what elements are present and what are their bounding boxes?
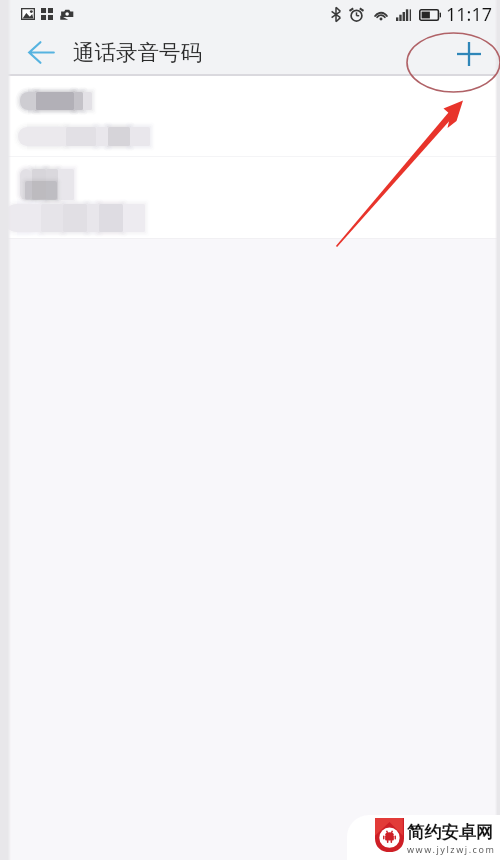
staticText: 通话录音号码	[73, 39, 202, 66]
button[interactable]	[0, 76, 500, 156]
button[interactable]: Add	[443, 28, 495, 76]
button[interactable]	[0, 157, 500, 237]
staticText: 简约安卓网	[407, 821, 493, 843]
staticText: www.jylzwj.com	[407, 843, 496, 855]
button[interactable]: Back	[14, 28, 68, 76]
staticText: 11:17	[446, 2, 493, 27]
